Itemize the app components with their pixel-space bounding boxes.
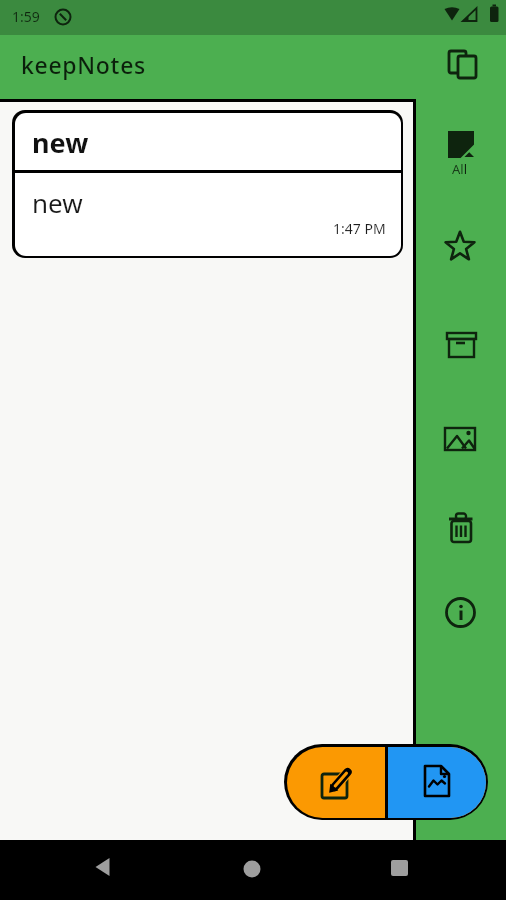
button[interactable] xyxy=(440,227,480,267)
button[interactable] xyxy=(88,852,118,882)
button[interactable] xyxy=(441,45,483,87)
button[interactable]: new xyxy=(12,110,403,258)
button[interactable] xyxy=(237,854,267,884)
staticText: 1:47 PM xyxy=(333,219,386,238)
staticText: 1:59 xyxy=(12,7,40,26)
button[interactable] xyxy=(387,744,488,820)
staticText: new xyxy=(32,124,89,161)
staticText: new xyxy=(32,185,83,220)
staticText: keepNotes xyxy=(21,49,146,80)
button[interactable] xyxy=(441,419,481,459)
button[interactable] xyxy=(441,509,481,549)
staticText: All xyxy=(452,160,468,178)
button[interactable] xyxy=(441,323,481,363)
button[interactable] xyxy=(441,593,481,633)
button[interactable]: All xyxy=(441,124,481,180)
button[interactable] xyxy=(284,744,385,820)
button[interactable] xyxy=(384,853,415,884)
